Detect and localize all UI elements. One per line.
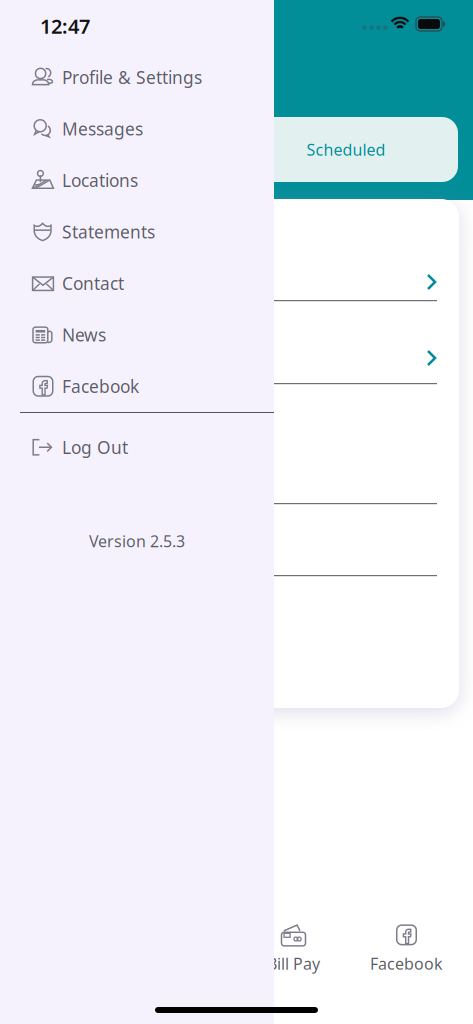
button[interactable]: Locations	[0, 154, 274, 206]
button[interactable]: Profile & Settings	[0, 51, 274, 103]
staticText: Messages	[62, 117, 143, 140]
staticText: Locations	[62, 169, 138, 192]
staticText: Contact	[62, 272, 124, 295]
staticText: Log Out	[62, 436, 128, 459]
staticText: Facebook	[370, 953, 443, 974]
button[interactable]: Facebook	[350, 921, 463, 975]
staticText: Facebook	[62, 375, 139, 398]
staticText: Pending	[90, 139, 153, 160]
staticText: Version 2.5.3	[89, 530, 185, 552]
button[interactable]: Contact	[0, 257, 274, 309]
button[interactable]: News	[0, 309, 274, 360]
button[interactable]: Statements	[0, 206, 274, 257]
button[interactable]: Pending	[10, 117, 458, 182]
button[interactable]: Log Out	[0, 421, 274, 473]
button[interactable]: Account details	[14, 301, 437, 383]
staticText: 12:47	[40, 13, 90, 39]
button[interactable]: Account details	[14, 201, 437, 300]
button[interactable]: Facebook	[0, 360, 274, 412]
staticText: Profile & Settings	[62, 66, 202, 89]
staticText: Bill Pay	[267, 953, 320, 974]
staticText: Scheduled	[306, 139, 385, 160]
staticText: Statements	[62, 220, 155, 243]
staticText: News	[62, 323, 106, 346]
button[interactable]: Bill Pay	[237, 921, 350, 975]
button[interactable]: Messages	[0, 103, 274, 154]
